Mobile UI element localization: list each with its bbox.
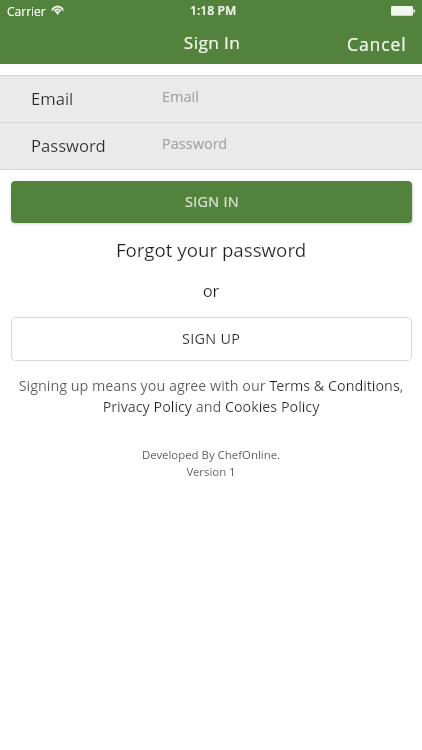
staticText: Carrier xyxy=(7,3,46,19)
staticText: 1:18 PM xyxy=(190,2,237,19)
other: Battery xyxy=(391,6,415,16)
button[interactable]: Terms & Conditions xyxy=(268,378,394,397)
staticText: Cancel xyxy=(347,32,407,56)
button[interactable]: Privacy Policy xyxy=(103,399,194,418)
button[interactable]: Password xyxy=(0,123,422,169)
staticText: Signing up means you agree with our Term… xyxy=(8,376,414,417)
staticText: or xyxy=(0,279,422,301)
button[interactable]: Cancel xyxy=(340,30,415,58)
button[interactable]: Email xyxy=(0,76,422,122)
button[interactable]: Cookies Policy xyxy=(225,399,321,418)
staticText: SIGN IN xyxy=(185,192,239,212)
staticText: Sign In xyxy=(1,31,422,54)
staticText: Email xyxy=(162,87,199,107)
other: Wi-Fi xyxy=(51,5,65,16)
button[interactable]: SIGN IN xyxy=(11,181,412,223)
staticText: Password xyxy=(31,134,106,157)
staticText: SIGN UP xyxy=(182,329,241,349)
staticText: Email xyxy=(31,87,74,110)
staticText: Forgot your password xyxy=(0,237,422,262)
button[interactable]: SIGN UP xyxy=(11,317,412,361)
staticText: Password xyxy=(162,134,228,154)
button[interactable]: Forgot your password xyxy=(0,236,422,262)
staticText: Developed By ChefOnline. Version 1 xyxy=(0,447,422,479)
